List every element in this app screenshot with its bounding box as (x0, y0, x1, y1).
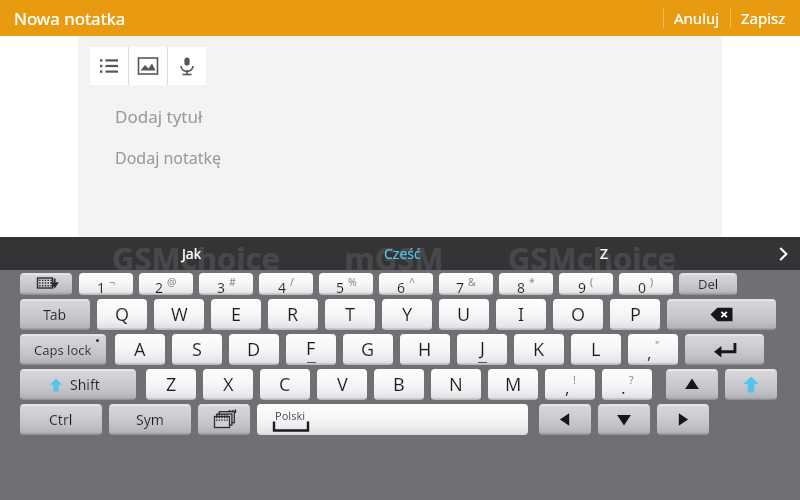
button[interactable]: Down (598, 404, 650, 435)
button[interactable]: Del (679, 273, 737, 295)
button[interactable]: T (325, 299, 375, 330)
button[interactable]: , (628, 334, 678, 365)
button[interactable]: A (115, 334, 165, 365)
staticText: Shift (70, 375, 100, 394)
button[interactable]: Ctrl (20, 404, 102, 435)
button[interactable]: Sym (109, 404, 191, 435)
button[interactable]: 9 (559, 273, 613, 295)
button[interactable]: N (431, 369, 481, 400)
button[interactable]: Enter (685, 334, 764, 365)
staticText: ^ (409, 275, 416, 289)
button[interactable]: X (203, 369, 253, 400)
button[interactable]: D (229, 334, 279, 365)
staticText: J (480, 336, 485, 361)
staticText: Z (166, 372, 177, 397)
button[interactable]: R (268, 299, 318, 330)
staticText: E (231, 302, 242, 327)
button[interactable]: O (553, 299, 603, 330)
staticText: * (529, 275, 535, 289)
button[interactable]: W (154, 299, 204, 330)
staticText: K (533, 337, 545, 362)
staticText: L (591, 337, 601, 362)
staticText: Jak (182, 244, 202, 263)
button[interactable]: P (610, 299, 660, 330)
button[interactable]: More suggestions (766, 241, 800, 267)
staticText: , (565, 376, 570, 399)
button[interactable]: Voice recording (168, 47, 206, 85)
staticText: 3 (217, 278, 226, 295)
button[interactable]: 6 (379, 273, 433, 295)
button[interactable]: Hide keyboard (20, 273, 72, 295)
button[interactable]: 8 (499, 273, 553, 295)
button[interactable]: Caps lock (20, 334, 106, 365)
button[interactable]: Anuluj (664, 2, 730, 34)
staticText: Dodaj notatkę (115, 147, 222, 169)
staticText: Nowa notatka (14, 7, 126, 30)
staticText: T (345, 302, 356, 327)
button[interactable]: Insert image (129, 47, 167, 85)
button[interactable]: Up (666, 369, 718, 400)
button[interactable]: F (286, 334, 336, 365)
button[interactable]: 5 (319, 273, 373, 295)
button[interactable]: Q (97, 299, 147, 330)
button[interactable]: Shift (20, 369, 136, 400)
staticText: Ctrl (49, 410, 73, 429)
button[interactable]: V (317, 369, 367, 400)
staticText: O (571, 302, 586, 327)
staticText: GSMchoice mGSM GSMchoice (112, 237, 677, 270)
button[interactable]: Polski (257, 404, 528, 435)
staticText: A (134, 337, 146, 362)
staticText: ? (629, 373, 634, 387)
button[interactable]: Left (539, 404, 591, 435)
staticText: 5 (336, 278, 345, 295)
button[interactable]: Backspace (667, 299, 776, 330)
button[interactable]: Z (146, 369, 196, 400)
staticText: ) (650, 275, 654, 289)
button[interactable]: M (488, 369, 538, 400)
button[interactable]: C (260, 369, 310, 400)
staticText: Del (698, 275, 719, 293)
button[interactable]: , (545, 369, 595, 400)
staticText: Y (402, 302, 413, 327)
staticText: Sym (136, 410, 164, 429)
button[interactable]: 4 (259, 273, 313, 295)
button[interactable]: . (602, 369, 652, 400)
button[interactable]: B (374, 369, 424, 400)
button[interactable]: Y (382, 299, 432, 330)
staticText: Polski (275, 408, 306, 423)
button[interactable]: 3 (199, 273, 253, 295)
button[interactable]: H (400, 334, 450, 365)
staticText: F (306, 336, 316, 361)
button[interactable]: I (496, 299, 546, 330)
button[interactable]: S (172, 334, 222, 365)
button[interactable]: Change keyboard (198, 404, 250, 435)
staticText: Tab (43, 305, 67, 324)
button[interactable]: G (343, 334, 393, 365)
button[interactable]: 7 (439, 273, 493, 295)
button[interactable]: 0 (619, 273, 673, 295)
staticText: " (655, 338, 660, 352)
button[interactable]: Z (586, 238, 623, 269)
button[interactable]: 1 (79, 273, 133, 295)
staticText: W (171, 302, 188, 327)
staticText: ! (573, 373, 576, 387)
staticText: N (449, 372, 463, 397)
staticText: S (192, 337, 202, 362)
button[interactable]: Zapisz (731, 2, 792, 34)
button[interactable]: Jak (168, 238, 216, 269)
button[interactable]: L (571, 334, 621, 365)
button[interactable]: J (457, 334, 507, 365)
button[interactable]: Checklist (90, 47, 128, 85)
button[interactable]: 2 (139, 273, 193, 295)
button[interactable]: Right (657, 404, 709, 435)
button[interactable]: U (439, 299, 489, 330)
staticText: Q (115, 302, 130, 327)
button[interactable]: E (211, 299, 261, 330)
staticText: 8 (517, 278, 526, 295)
button[interactable]: K (514, 334, 564, 365)
button[interactable]: Shift (725, 369, 777, 400)
staticText: 2 (155, 278, 164, 295)
button[interactable]: Cześć (370, 238, 435, 269)
button[interactable]: Tab (20, 299, 90, 330)
staticText: H (418, 337, 432, 362)
